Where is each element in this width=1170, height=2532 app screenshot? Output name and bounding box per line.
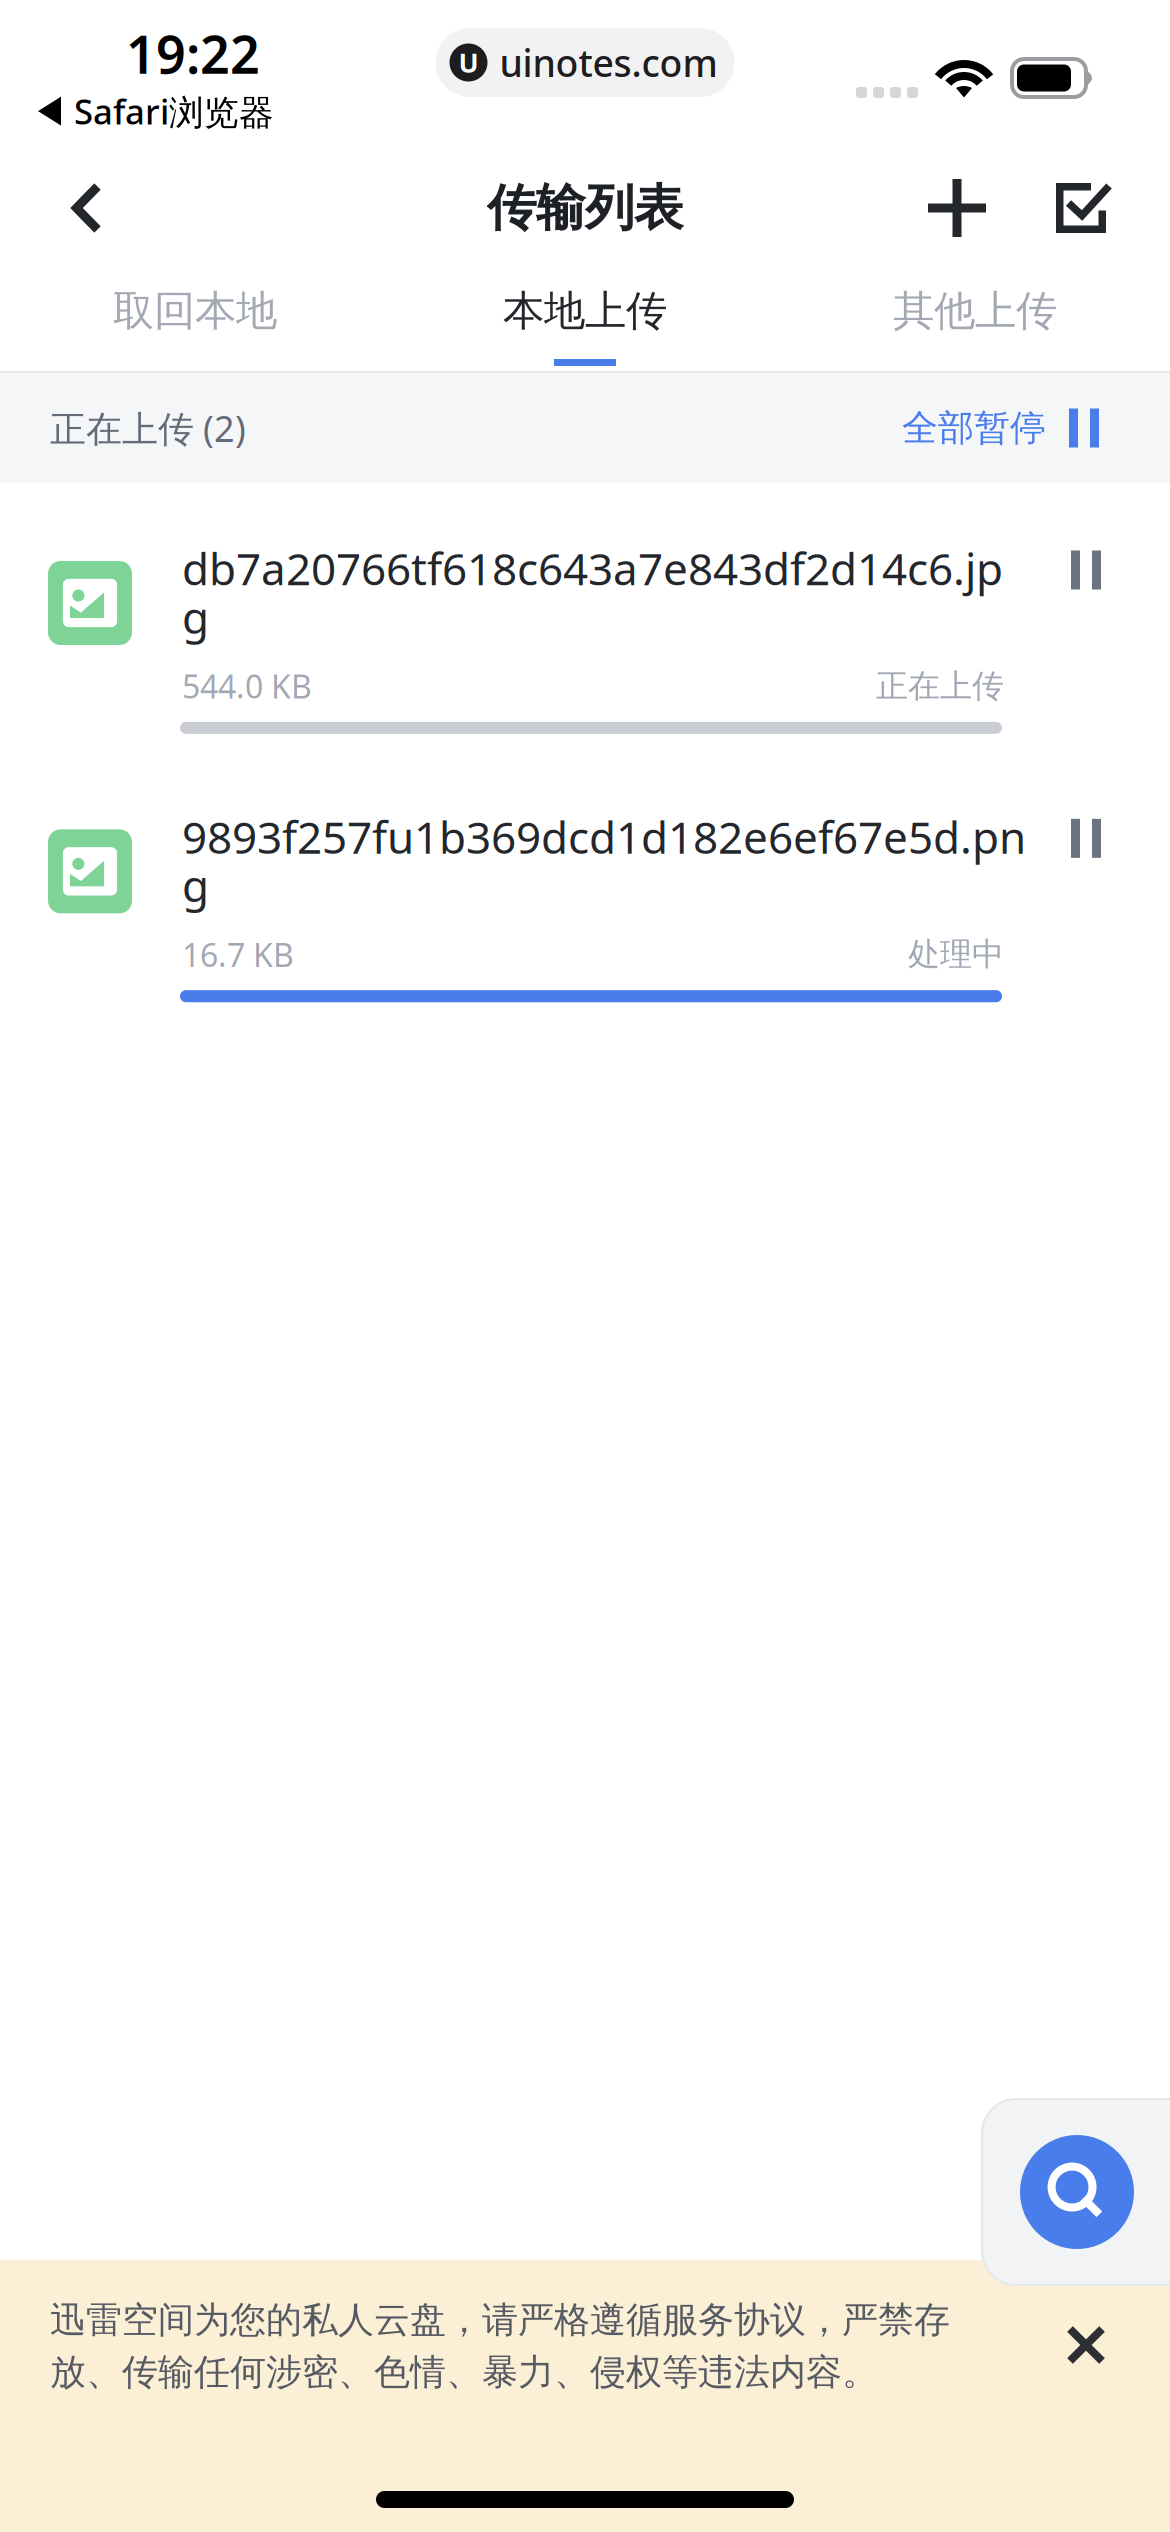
staticText: 19:22 xyxy=(126,19,260,88)
staticText: uinotes.com xyxy=(499,38,717,87)
staticText: db7a20766tf618c643a7e843df2d14c6.jp xyxy=(182,539,1003,597)
staticText: 其他上传 xyxy=(893,286,1057,336)
staticText: 16.7 KB xyxy=(182,933,294,976)
button[interactable]: 暂停 xyxy=(1071,539,1130,612)
staticText: 取回本地 xyxy=(113,286,277,336)
button[interactable]: 全部暂停 xyxy=(902,406,1099,450)
button[interactable]: 取回本地 xyxy=(0,261,390,371)
staticText: 本地上传 xyxy=(503,286,667,336)
staticText: Safari浏览器 xyxy=(74,88,274,134)
button[interactable]: 返回 xyxy=(44,155,130,261)
staticText: 544.0 KB xyxy=(182,665,312,707)
staticText: g xyxy=(182,856,209,914)
staticText: 正在上传 xyxy=(876,666,1004,706)
staticText: g xyxy=(182,587,209,646)
button[interactable]: 暂停 xyxy=(1071,807,1130,880)
button[interactable]: 搜索 xyxy=(982,2099,1170,2285)
staticText: 处理中 xyxy=(908,935,1004,974)
staticText: 9893f257fu1b369dcd1d182e6ef67e5d.pn xyxy=(182,807,1026,866)
button[interactable]: 其他上传 xyxy=(780,261,1170,371)
button[interactable]: 新建传输 xyxy=(882,155,1032,261)
staticText: 传输列表 xyxy=(487,178,683,238)
button[interactable]: 多选 xyxy=(1032,155,1138,261)
button[interactable]: 本地上传 xyxy=(390,261,780,371)
staticText: 正在上传 (2) xyxy=(50,404,246,452)
staticText: 全部暂停 xyxy=(902,406,1046,450)
staticText: U xyxy=(458,45,478,80)
staticText: 迅雷空间为您的私人云盘，请严格遵循服务协议，严禁存放、传输任何涉密、色情、暴力、… xyxy=(50,2298,950,2394)
button[interactable]: 关闭 xyxy=(1038,2297,1134,2393)
